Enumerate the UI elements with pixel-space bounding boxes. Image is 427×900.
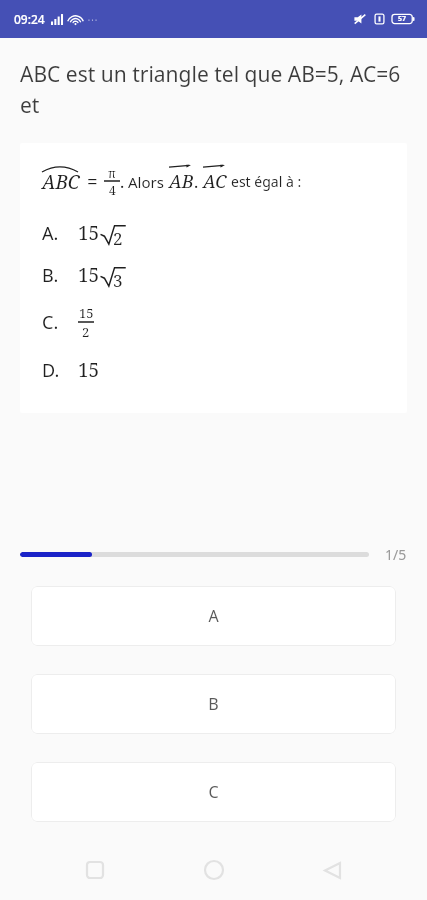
staticText: est égal à : <box>231 172 302 191</box>
staticText: 3 <box>113 269 123 292</box>
staticText: . <box>120 170 125 193</box>
staticText: = <box>87 169 98 195</box>
staticText: 15 <box>78 220 100 246</box>
staticText: B. <box>42 263 72 288</box>
staticText: 1/5 <box>385 545 407 564</box>
button[interactable]: B <box>31 674 396 734</box>
staticText: 15 <box>78 357 100 383</box>
staticText: AB <box>169 169 194 194</box>
staticText: 2 <box>82 323 90 341</box>
staticText: ABC est un triangle tel que AB=5, AC=6 e… <box>20 60 407 119</box>
staticText: π <box>108 165 116 181</box>
staticText: A. <box>42 221 72 246</box>
staticText: D. <box>42 358 72 383</box>
staticText: 15 <box>78 262 100 288</box>
button[interactable]: Back <box>308 846 356 894</box>
staticText: 15 <box>79 304 94 322</box>
staticText: 2 <box>113 227 123 250</box>
staticText: Alors <box>128 172 164 192</box>
staticText: C <box>208 781 219 803</box>
staticText: 57 <box>398 14 407 24</box>
staticText: AC <box>203 169 227 194</box>
staticText: ABC <box>42 169 80 195</box>
staticText: B <box>208 693 219 715</box>
button[interactable]: Home <box>190 846 238 894</box>
staticText: C. <box>42 310 72 335</box>
staticText: 4 <box>109 182 116 198</box>
button[interactable]: A <box>31 586 396 646</box>
button[interactable]: Recents <box>71 846 119 894</box>
staticText: 09:24 <box>14 11 45 27</box>
button[interactable]: C <box>31 762 396 822</box>
staticText: A <box>208 605 219 627</box>
staticText: . <box>194 170 199 193</box>
